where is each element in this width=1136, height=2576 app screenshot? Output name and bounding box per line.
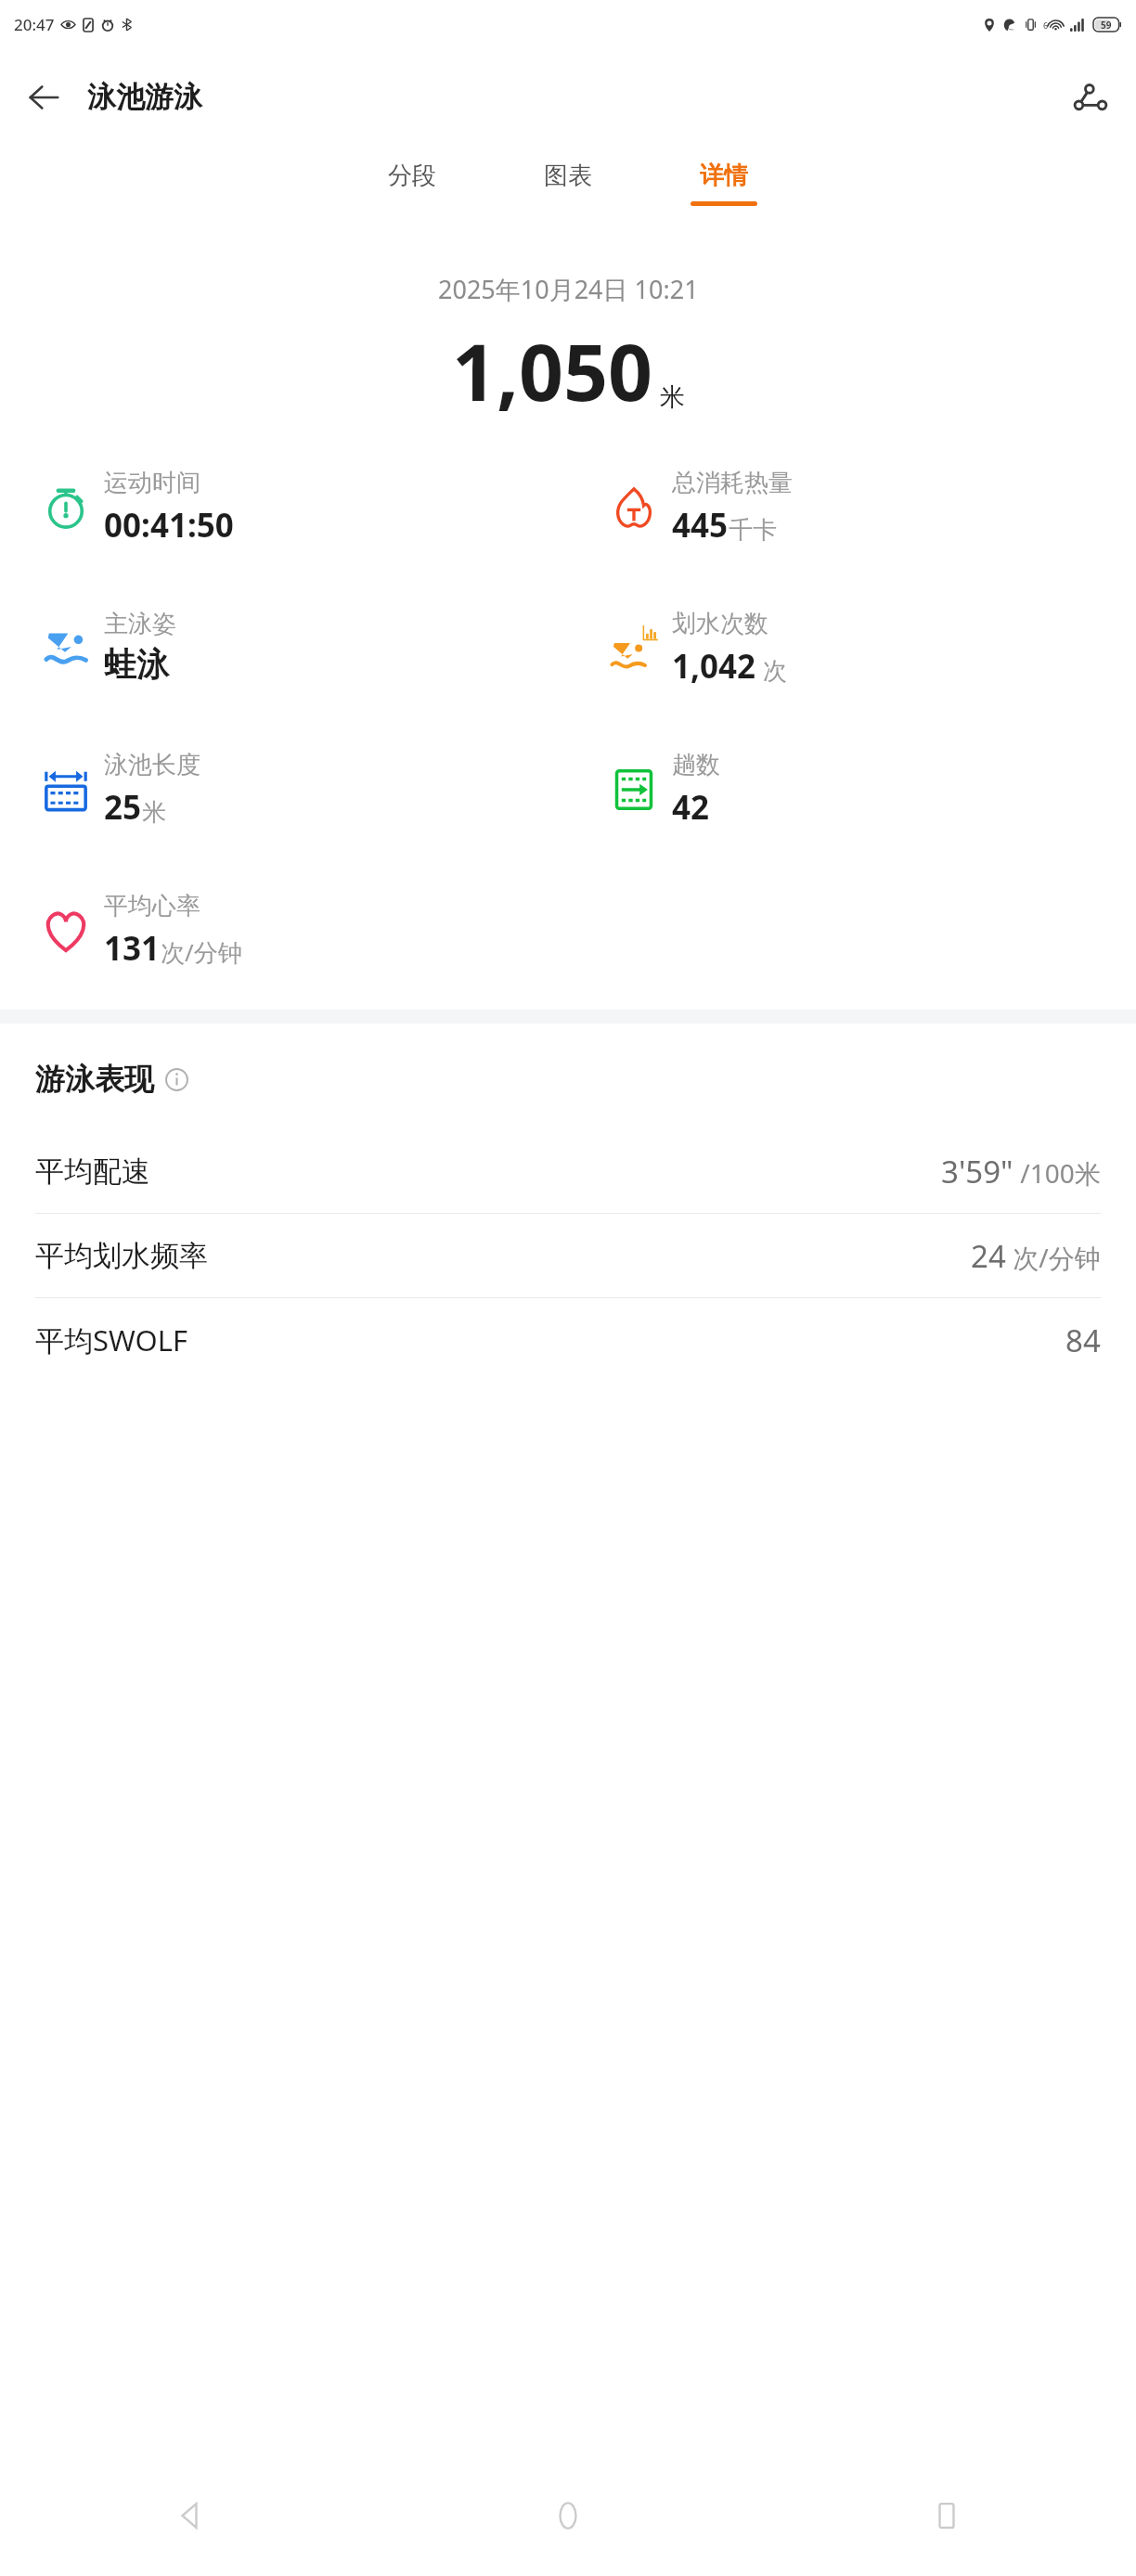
staticText: 84 [1065, 1320, 1101, 1361]
staticText: /100米 [1013, 1155, 1101, 1191]
button[interactable]: 总消耗热量 [609, 468, 1136, 547]
staticText: 泳池长度 [104, 750, 200, 780]
staticText: 24 [971, 1235, 1006, 1277]
staticText: 00:41:50 [104, 503, 234, 547]
staticText: 131 [104, 926, 161, 971]
staticText: 1,050 [452, 317, 653, 423]
staticText: 蛙泳 [104, 644, 169, 685]
staticText: 3'59" [941, 1151, 1013, 1192]
staticText: 图表 [544, 161, 592, 191]
button[interactable]: 主泳姿 [41, 609, 568, 685]
staticText: 平均SWOLF [35, 1320, 188, 1359]
button[interactable]: 图表 [517, 146, 619, 248]
staticText: 1,042 [672, 644, 756, 689]
staticText: 6 [1043, 19, 1049, 31]
staticText: 2025年10月24日 10:21 [438, 272, 699, 306]
button[interactable]: 分段 [361, 146, 463, 248]
staticText: 运动时间 [104, 468, 200, 498]
staticText: 千卡 [729, 515, 777, 546]
button[interactable]: 详情 [673, 146, 775, 248]
button[interactable]: 运动时间 [41, 468, 568, 547]
button[interactable]: 划水次数 [609, 609, 1136, 689]
button[interactable]: 泳池长度 [41, 750, 568, 830]
staticText: 泳池游泳 [87, 79, 202, 115]
staticText: 25 [104, 785, 142, 830]
button[interactable]: 平均配速 [35, 1129, 1101, 1213]
staticText: 次/分钟 [1006, 1240, 1101, 1275]
button[interactable]: 游泳表现 [35, 1061, 188, 1098]
staticText: 20:47 [14, 14, 55, 35]
staticText: 米 [142, 797, 166, 828]
button[interactable]: 平均心率 [41, 891, 568, 971]
staticText: 平均配速 [35, 1153, 150, 1190]
staticText: 平均心率 [104, 891, 200, 921]
staticText: 445 [672, 503, 729, 547]
button[interactable]: Back [15, 69, 72, 126]
button[interactable]: 平均划水频率 [35, 1214, 1101, 1297]
button[interactable]: 平均SWOLF [35, 1298, 1101, 1382]
staticText: 游泳表现 [35, 1061, 154, 1098]
button[interactable]: Share [1062, 69, 1119, 126]
staticText: 详情 [700, 161, 748, 191]
staticText: 总消耗热量 [672, 468, 793, 498]
staticText: 划水次数 [672, 609, 768, 639]
staticText: 59 [1101, 19, 1112, 32]
button[interactable]: 趟数 [609, 750, 1136, 830]
staticText: 主泳姿 [104, 609, 176, 639]
staticText: 平均划水频率 [35, 1238, 208, 1274]
staticText: 次 [756, 653, 787, 687]
staticText: 次/分钟 [161, 935, 242, 969]
staticText: 42 [672, 785, 710, 830]
staticText: 米 [660, 381, 685, 413]
staticText: 分段 [388, 161, 436, 191]
staticText: 趟数 [672, 750, 720, 780]
